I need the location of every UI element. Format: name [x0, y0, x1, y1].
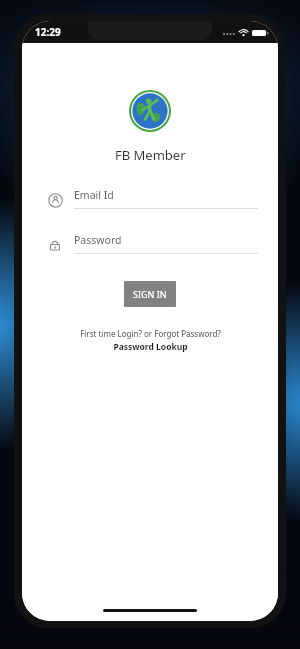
staticText: 12:29	[35, 25, 61, 39]
button[interactable]: Email Id	[42, 188, 258, 212]
staticText: FB Member	[115, 146, 186, 164]
button[interactable]: First time Login? or Forgot Password?	[80, 328, 221, 353]
staticText: SIGN IN	[133, 288, 167, 300]
staticText: Email Id	[74, 188, 114, 202]
staticText: Password Lookup	[113, 341, 188, 353]
button[interactable]: SIGN IN	[124, 281, 176, 307]
button[interactable]: Password	[42, 233, 258, 257]
staticText: First time Login? or Forgot Password?	[80, 328, 221, 339]
staticText: Password	[74, 233, 122, 247]
